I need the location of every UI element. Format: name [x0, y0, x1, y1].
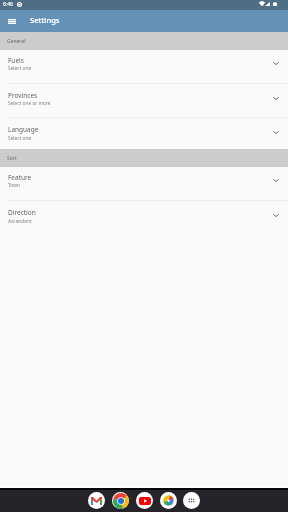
staticText: Select one	[8, 65, 32, 72]
button[interactable]: Open navigation menu	[3, 13, 21, 30]
button[interactable]: Provinces	[0, 83, 288, 118]
staticText: Sort	[7, 155, 17, 162]
button[interactable]: Direction	[0, 201, 288, 234]
staticText: Town	[8, 182, 20, 189]
button[interactable]: Fuels	[0, 50, 288, 84]
staticText: Ascendent	[8, 218, 32, 225]
staticText: Feature	[8, 173, 32, 182]
button[interactable]: Chrome	[112, 492, 129, 509]
button[interactable]: Gmail	[88, 492, 105, 509]
staticText: Language	[8, 125, 39, 134]
staticText: Provinces	[8, 91, 38, 100]
staticText: 6:46	[3, 1, 13, 8]
button[interactable]: Feature	[0, 167, 288, 201]
staticText: General	[7, 38, 26, 45]
staticText: Direction	[8, 208, 36, 217]
button[interactable]: YouTube	[136, 492, 153, 509]
staticText: Fuels	[8, 56, 24, 65]
button[interactable]: Language	[0, 118, 288, 149]
button[interactable]: Google Photos	[160, 492, 177, 509]
staticText: Settings	[30, 15, 60, 25]
staticText: Select one or more	[8, 100, 51, 107]
button[interactable]: All apps	[183, 492, 200, 509]
staticText: Select one	[8, 135, 32, 142]
